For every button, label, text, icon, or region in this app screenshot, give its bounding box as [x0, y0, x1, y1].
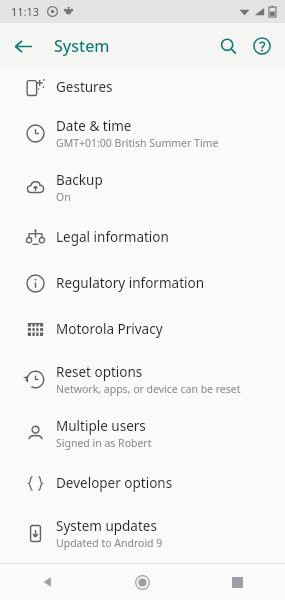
staticText: System updates [56, 517, 157, 535]
button[interactable]: Back [0, 564, 95, 600]
staticText: Legal information [56, 228, 169, 246]
button[interactable]: Multiple users [0, 406, 285, 460]
staticText: Date & time [56, 117, 132, 135]
staticText: GMT+01:00 British Summer Time [56, 136, 219, 150]
button[interactable]: Home [95, 564, 190, 600]
button[interactable]: Legal information [0, 214, 285, 260]
button[interactable]: Back [6, 29, 40, 63]
staticText: On [56, 190, 71, 204]
staticText: Regulatory information [56, 274, 205, 292]
button[interactable]: Developer options [0, 460, 285, 506]
staticText: Network, apps, or device can be reset [56, 382, 241, 396]
button[interactable]: Search [211, 29, 245, 63]
button[interactable]: Backup [0, 160, 285, 214]
staticText: Motorola Privacy [56, 320, 163, 338]
staticText: Reset options [56, 363, 143, 381]
staticText: Gestures [56, 78, 113, 96]
button[interactable]: Regulatory information [0, 260, 285, 306]
button[interactable]: System updates [0, 506, 285, 560]
button[interactable]: Help [245, 29, 279, 63]
staticText: Signed in as Robert [56, 436, 152, 450]
button[interactable]: Motorola Privacy [0, 306, 285, 352]
staticText: Updated to Android 9 [56, 536, 163, 550]
button[interactable]: Recent apps [190, 564, 285, 600]
button[interactable]: Reset options [0, 352, 285, 406]
staticText: 11:13 [11, 4, 40, 19]
staticText: Developer options [56, 474, 173, 492]
button[interactable]: Gestures [0, 68, 285, 106]
button[interactable]: Date & time [0, 106, 285, 160]
staticText: Multiple users [56, 417, 146, 435]
staticText: Backup [56, 171, 103, 189]
staticText: System [54, 35, 110, 57]
